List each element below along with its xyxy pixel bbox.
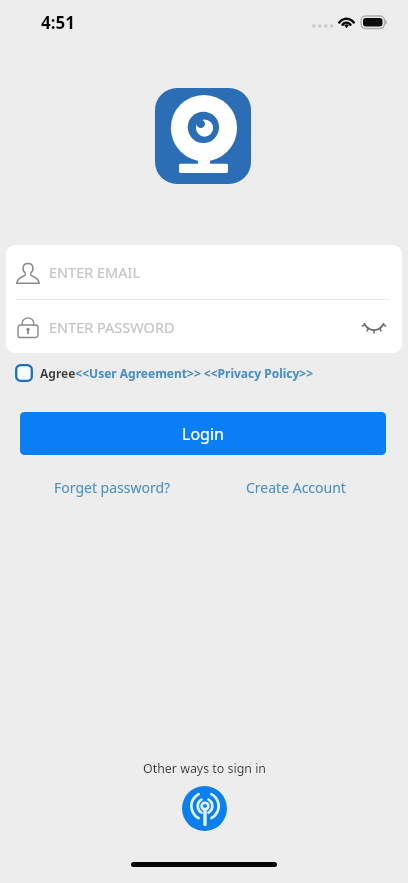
staticText: 4:51 [41, 11, 75, 34]
staticText: Forget password? [54, 478, 171, 497]
button[interactable]: Show password [351, 300, 397, 353]
button[interactable]: Create Account [236, 473, 356, 502]
staticText: ENTER EMAIL [49, 262, 140, 282]
button[interactable]: ENTER PASSWORD [6, 300, 402, 353]
button[interactable]: ENTER EMAIL [6, 245, 402, 299]
staticText: Agree<<User Agreement>> <<Privacy Policy… [40, 365, 314, 381]
staticText: Login [182, 423, 224, 445]
button[interactable]: Login [20, 412, 386, 455]
button[interactable]: Forget password? [44, 473, 181, 502]
button[interactable]: Agree<<User Agreement>> <<Privacy Policy… [15, 364, 314, 382]
staticText: ENTER PASSWORD [49, 317, 175, 337]
staticText: Create Account [246, 478, 346, 497]
staticText: Other ways to sign in [143, 760, 266, 777]
button[interactable]: Sign in with nearby device [182, 786, 227, 831]
